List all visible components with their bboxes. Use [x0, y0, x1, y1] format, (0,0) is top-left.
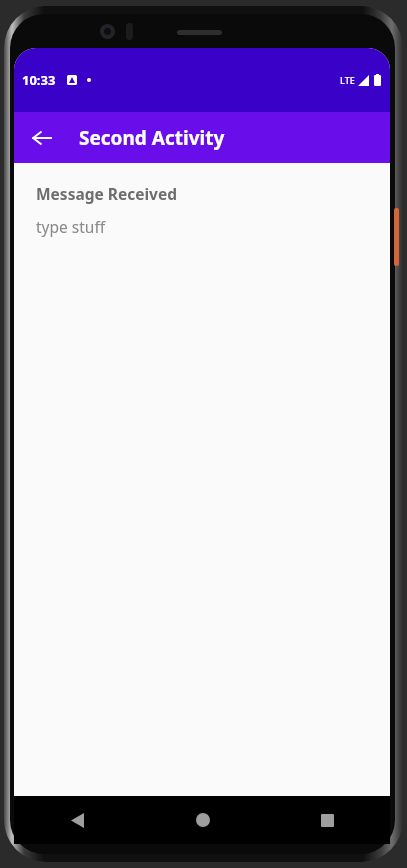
staticText: Message Received — [36, 183, 178, 204]
staticText: LTE — [340, 74, 355, 86]
staticText: Second Activity — [79, 125, 225, 151]
staticText: 10:33 — [22, 71, 56, 89]
staticText: type stuff — [36, 216, 106, 237]
button[interactable]: Navigate up — [20, 116, 64, 160]
button[interactable]: Back — [14, 796, 140, 844]
button[interactable]: Home — [140, 796, 265, 844]
button[interactable]: Recent apps — [265, 796, 390, 844]
